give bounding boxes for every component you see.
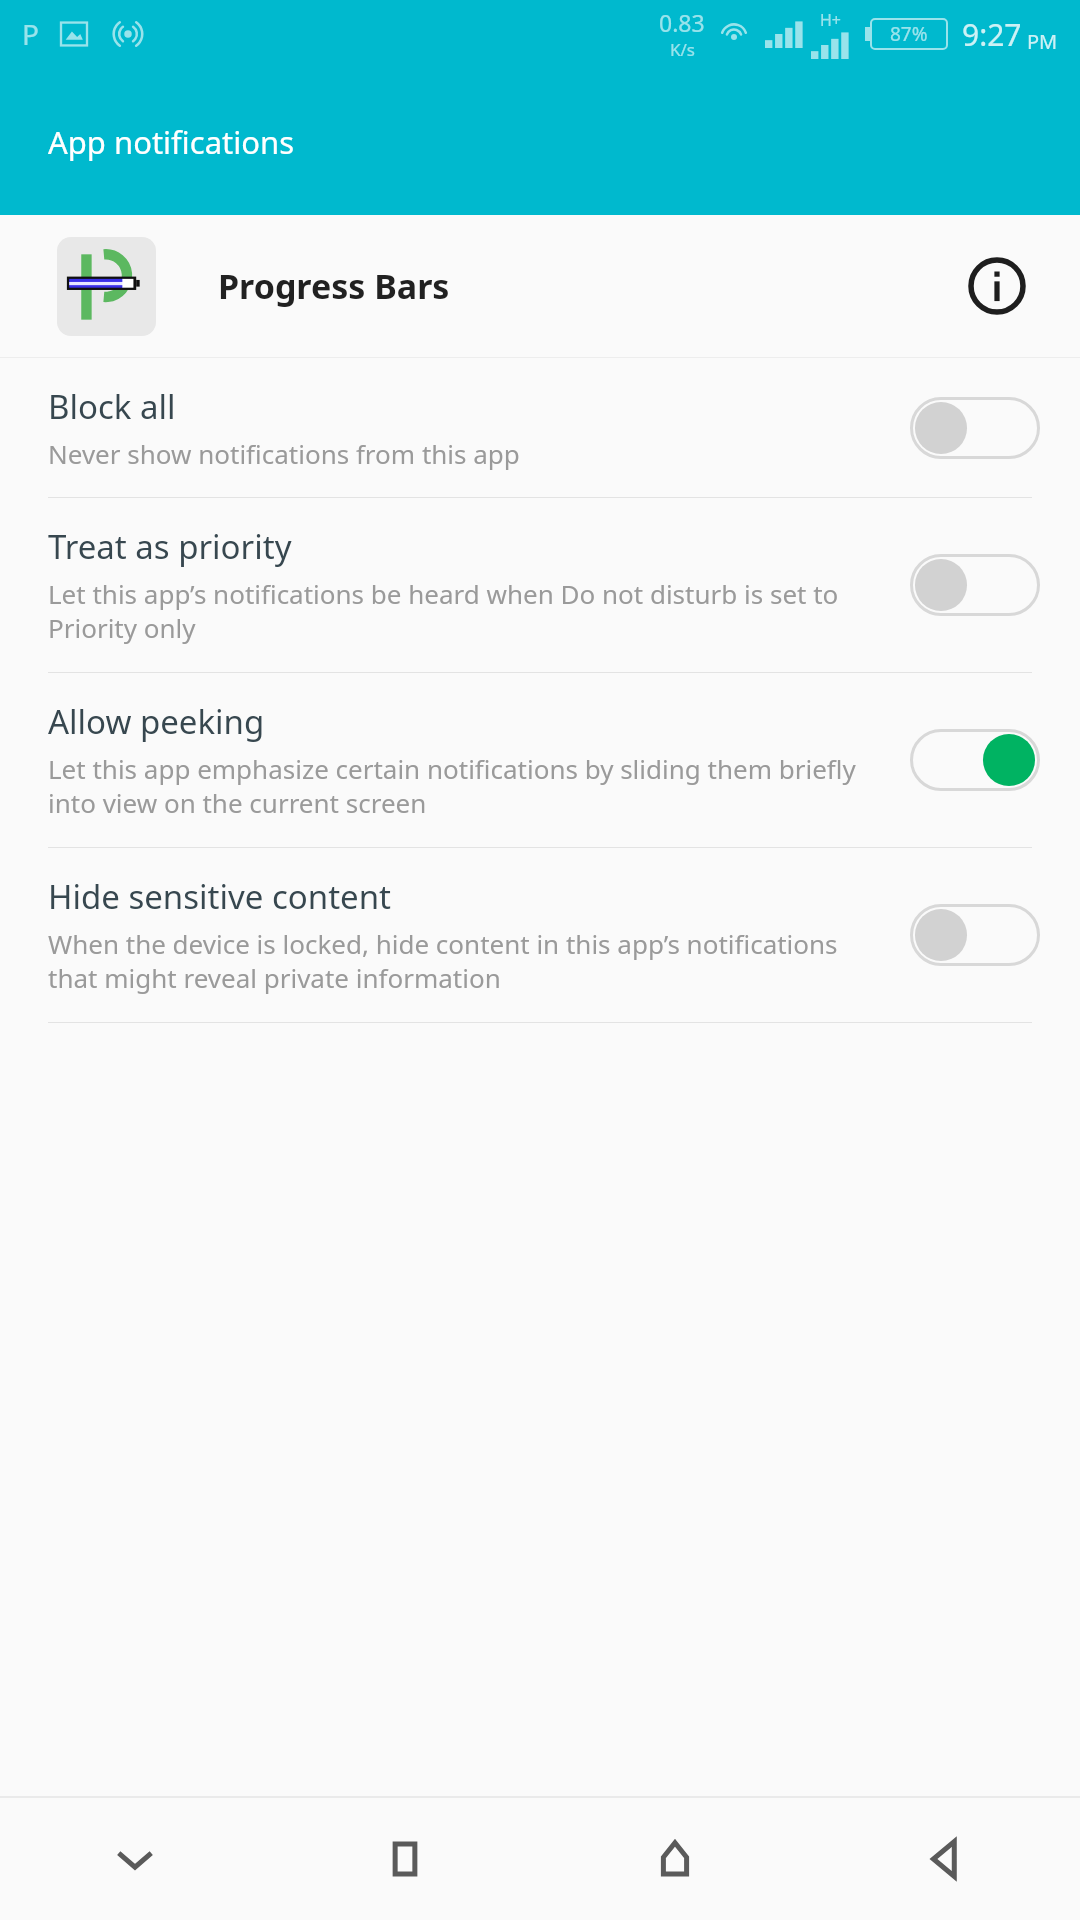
staticText: App notifications <box>48 121 294 163</box>
staticText: Allow peeking <box>48 699 265 744</box>
staticText: 0.83 <box>659 7 705 38</box>
button[interactable]: Hide keyboard <box>0 1798 270 1920</box>
staticText: Block all <box>48 384 176 429</box>
staticText: Treat as priority <box>48 524 292 569</box>
staticText: Let this app emphasize certain notificat… <box>48 751 880 821</box>
button[interactable]: Progress Bars <box>0 215 1080 357</box>
button[interactable]: App info <box>954 243 1040 329</box>
button[interactable]: Off <box>910 554 1040 616</box>
staticText: K/s <box>670 38 695 61</box>
button[interactable]: Off <box>910 904 1040 966</box>
button[interactable]: Treat as priority <box>0 498 1080 672</box>
staticText: When the device is locked, hide content … <box>48 926 880 996</box>
staticText: Never show notifications from this app <box>48 436 520 471</box>
button[interactable]: Recents <box>270 1798 540 1920</box>
staticText: Hide sensitive content <box>48 874 392 919</box>
staticText: 87% <box>890 21 928 47</box>
staticText: H+ <box>820 9 842 31</box>
button[interactable]: Block all <box>0 358 1080 497</box>
button[interactable]: On <box>910 729 1040 791</box>
staticText: Progress Bars <box>218 263 450 309</box>
button[interactable]: Allow peeking <box>0 673 1080 847</box>
button[interactable]: Home <box>540 1798 810 1920</box>
button[interactable]: Back <box>810 1798 1080 1920</box>
staticText: PM <box>1027 28 1058 55</box>
staticText: P <box>22 15 39 53</box>
staticText: 9:27 <box>962 14 1022 55</box>
staticText: Let this app’s notifications be heard wh… <box>48 576 880 646</box>
button[interactable]: Hide sensitive content <box>0 848 1080 1022</box>
button[interactable]: Off <box>910 397 1040 459</box>
